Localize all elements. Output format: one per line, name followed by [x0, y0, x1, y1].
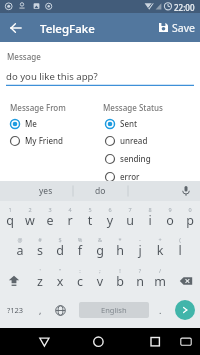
button[interactable]: " — [50, 267, 70, 295]
staticText: sending — [120, 153, 151, 164]
staticText: w — [20, 212, 40, 229]
staticText: g — [90, 242, 110, 259]
staticText: b — [110, 273, 130, 290]
button[interactable]: : — [70, 267, 90, 295]
button[interactable]: * — [110, 236, 130, 264]
button[interactable]: . — [150, 297, 170, 323]
staticText: 4 — [60, 206, 80, 213]
button[interactable]: sending — [103, 150, 183, 167]
staticText: 6 — [100, 206, 120, 213]
button[interactable]: do — [73, 181, 127, 201]
staticText: Message Status — [103, 102, 163, 113]
button[interactable]: Back — [3, 15, 28, 40]
staticText: x — [50, 273, 70, 290]
button[interactable]: Voice input — [176, 181, 196, 201]
staticText: English — [101, 305, 127, 315]
staticText: / — [150, 267, 170, 274]
button[interactable]: 8 — [140, 206, 160, 234]
button[interactable]: 1 — [0, 206, 20, 234]
button[interactable]: ?123 — [2, 297, 28, 323]
button[interactable]: 0 — [180, 206, 200, 234]
button[interactable]: Recent apps — [145, 328, 166, 355]
button[interactable]: + — [150, 236, 170, 264]
button[interactable]: - — [130, 236, 150, 264]
button[interactable]: 4 — [60, 206, 80, 234]
staticText: yes — [39, 185, 53, 197]
button[interactable]: , — [30, 297, 50, 323]
button[interactable]: Back — [34, 328, 55, 355]
staticText: & — [90, 236, 110, 243]
staticText: u — [120, 212, 140, 229]
staticText: 3 — [40, 206, 60, 213]
staticText: Message From — [10, 102, 66, 113]
button[interactable]: English — [79, 302, 149, 318]
staticText: % — [70, 236, 90, 243]
staticText: 0 — [180, 206, 200, 213]
button[interactable]: ! — [110, 267, 130, 295]
button[interactable]: Me — [8, 115, 88, 132]
button[interactable]: 9 — [160, 206, 180, 234]
button[interactable]: ; — [90, 267, 110, 295]
button[interactable]: / — [150, 267, 170, 295]
staticText: a — [10, 242, 30, 259]
button[interactable]: Change language — [50, 297, 70, 323]
button[interactable]: unread — [103, 132, 183, 149]
button[interactable]: Shift — [3, 268, 25, 294]
staticText: l — [170, 242, 190, 259]
staticText: do — [95, 185, 106, 197]
button[interactable]: 7 — [120, 206, 140, 234]
staticText: s — [30, 242, 50, 259]
button[interactable]: 5 — [80, 206, 100, 234]
staticText: q — [0, 212, 20, 229]
button[interactable]: error — [103, 168, 183, 185]
button[interactable]: Switch keyboard — [176, 328, 197, 355]
button[interactable]: yes — [19, 181, 73, 201]
staticText: e — [40, 212, 60, 229]
staticText: error — [120, 171, 140, 182]
button[interactable]: Home — [88, 328, 109, 355]
button[interactable]: ( — [170, 236, 190, 264]
staticText: Sent — [120, 118, 138, 129]
staticText: n — [130, 273, 150, 290]
staticText: # — [30, 236, 50, 243]
staticText: 9 — [160, 206, 180, 213]
staticText: c — [70, 273, 90, 290]
button[interactable]: # — [30, 236, 50, 264]
staticText: ( — [170, 236, 190, 243]
button[interactable]: 6 — [100, 206, 120, 234]
button[interactable]: Sent — [103, 115, 183, 132]
staticText: Save — [172, 21, 195, 35]
staticText: z — [30, 273, 50, 290]
staticText: : — [70, 267, 90, 274]
button[interactable]: Save — [157, 17, 197, 38]
staticText: + — [150, 236, 170, 243]
staticText: 5 — [80, 206, 100, 213]
button[interactable]: % — [70, 236, 90, 264]
staticText: Me — [25, 118, 37, 129]
button[interactable]: ' — [30, 267, 50, 295]
button[interactable]: Enter — [175, 300, 195, 320]
staticText: @ — [10, 236, 30, 243]
button[interactable]: & — [90, 236, 110, 264]
button[interactable]: 2 — [20, 206, 40, 234]
staticText: 2 — [20, 206, 40, 213]
button[interactable]: @ — [10, 236, 30, 264]
button[interactable]: My Friend — [8, 132, 88, 149]
staticText: 7 — [120, 206, 140, 213]
staticText: k — [150, 242, 170, 259]
button[interactable]: $ — [50, 236, 70, 264]
button[interactable]: 3 — [40, 206, 60, 234]
staticText: do you like this app? — [6, 70, 98, 83]
staticText: o — [160, 212, 180, 229]
staticText: * — [110, 236, 130, 243]
staticText: j — [130, 242, 150, 259]
staticText: My Friend — [25, 135, 63, 146]
staticText: f — [70, 242, 90, 259]
staticText: , — [39, 304, 42, 316]
staticText: t — [80, 212, 100, 229]
staticText: TelegFake — [40, 21, 95, 37]
staticText: m — [150, 273, 170, 290]
button[interactable]: Backspace — [174, 268, 198, 294]
button[interactable]: ? — [130, 267, 150, 295]
